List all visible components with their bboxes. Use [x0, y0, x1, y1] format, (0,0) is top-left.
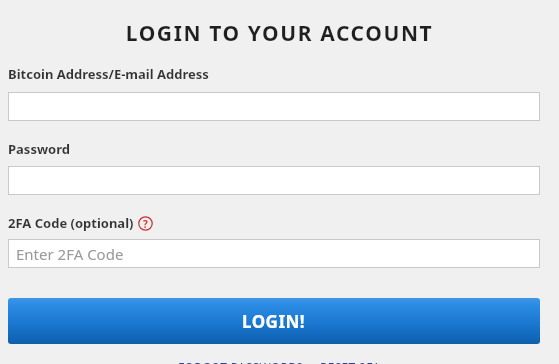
staticText: Enter 2FA Code	[16, 244, 124, 264]
button[interactable]	[8, 92, 540, 121]
staticText: FORGOT PASSWORD?	[178, 359, 303, 364]
staticText: ?	[143, 217, 148, 231]
button[interactable]: Help about 2FA code	[138, 216, 153, 231]
staticText: Bitcoin Address/E-mail Address	[8, 65, 209, 83]
staticText: 2FA Code (optional)	[8, 214, 134, 232]
button[interactable]: Enter 2FA Code	[8, 239, 540, 268]
button[interactable]: LOGIN!	[8, 298, 540, 344]
staticText: LOGIN TO YOUR ACCOUNT	[0, 19, 559, 48]
staticText: Password	[8, 140, 70, 158]
button[interactable]: RESET 2FA	[320, 359, 381, 364]
button[interactable]	[8, 166, 540, 195]
staticText: LOGIN!	[242, 310, 306, 333]
button[interactable]: FORGOT PASSWORD?	[178, 359, 303, 364]
staticText: RESET 2FA	[320, 359, 381, 364]
